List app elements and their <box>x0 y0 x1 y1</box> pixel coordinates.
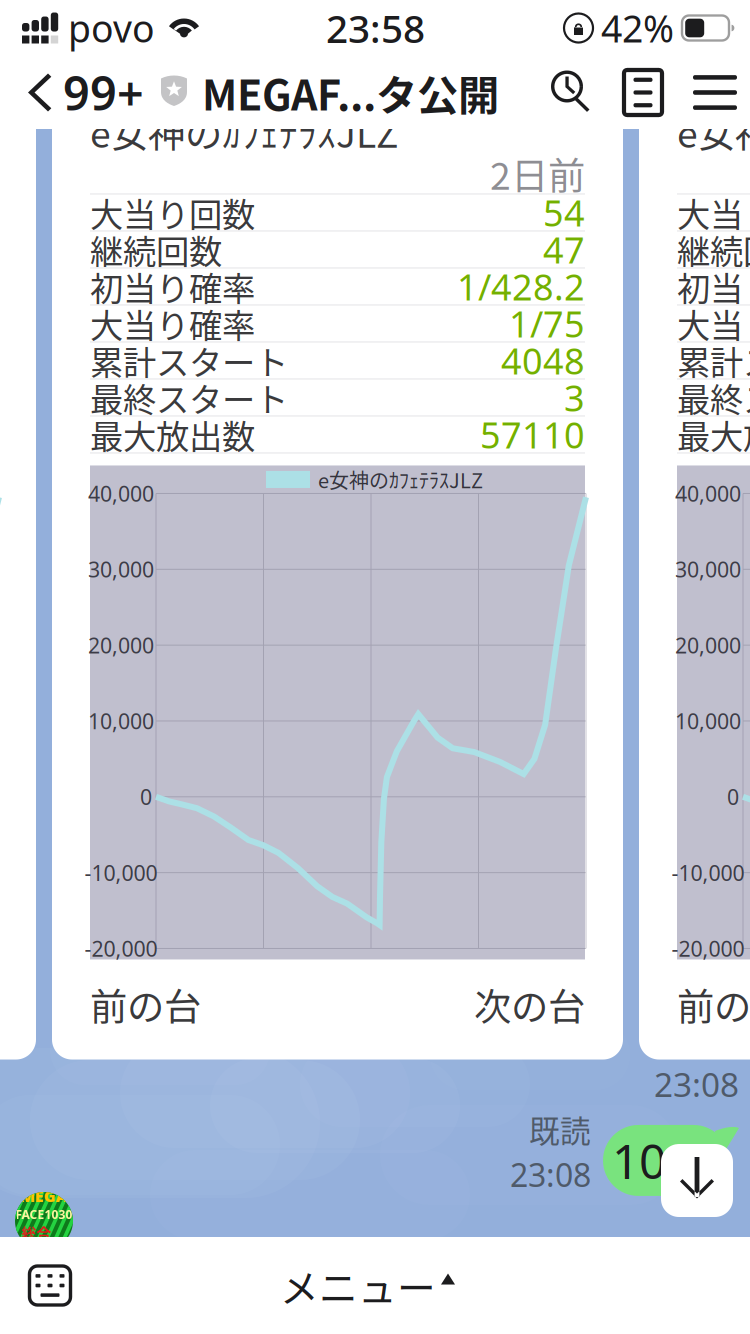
staticText: 1000 <box>612 1129 720 1192</box>
staticText: e女神のｶﾌｪﾃﾗｽJLZ <box>318 465 483 494</box>
staticText: 次の台 <box>474 977 585 1032</box>
staticText: 57110 <box>480 411 585 458</box>
button[interactable]: 次の台 <box>468 959 603 1050</box>
staticText: -10,000 <box>84 858 157 887</box>
staticText: 最大放出数 <box>90 410 255 459</box>
staticText: 23:08 <box>510 1153 591 1196</box>
staticText: 累計スタート <box>677 336 750 385</box>
staticText: 40,000 <box>675 479 741 508</box>
staticText: 継続回数 <box>90 225 222 274</box>
staticText: メニュー <box>280 1257 436 1313</box>
staticText: 20,000 <box>675 631 741 659</box>
staticText: 総合データ <box>21 1222 66 1265</box>
staticText: 47 <box>543 226 585 273</box>
button[interactable]: Search history <box>536 56 606 129</box>
staticText: MEGA <box>20 1185 68 1206</box>
button[interactable]: MEGAF...タ公開 <box>150 56 499 129</box>
staticText: 既読 <box>529 1107 591 1151</box>
staticText: 最終スタート <box>677 373 750 422</box>
staticText: 初当り確率 <box>677 262 750 311</box>
staticText: 大当り確率 <box>90 299 255 348</box>
button[interactable]: Menu <box>680 56 750 129</box>
staticText: 99+ <box>63 61 144 123</box>
staticText: povo <box>68 3 155 53</box>
button[interactable]: Notes <box>606 56 680 129</box>
staticText: 0 <box>140 783 152 811</box>
staticText: 23:58 <box>326 2 425 54</box>
staticText: 前の台 <box>677 977 750 1032</box>
staticText: FACE1030 <box>15 1206 72 1222</box>
button[interactable]: Scroll to bottom <box>661 1144 733 1217</box>
staticText: MEGAF...タ公開 <box>202 63 499 122</box>
staticText: 30,000 <box>88 555 154 583</box>
staticText: 継続回数 <box>677 225 750 274</box>
staticText: 最大放出数 <box>677 410 750 459</box>
staticText: 23:08 <box>654 1062 739 1106</box>
staticText: 40,000 <box>88 479 154 508</box>
staticText: 大当り回数 <box>90 188 255 237</box>
button[interactable]: 前の台 <box>72 959 207 1050</box>
button[interactable]: Keyboard <box>0 1237 86 1334</box>
staticText: -20,000 <box>671 934 744 963</box>
staticText: 4048 <box>501 337 585 384</box>
staticText: 54 <box>543 189 585 236</box>
staticText: 10,000 <box>88 707 154 735</box>
staticText: 42% <box>601 3 674 53</box>
button[interactable]: メニュー <box>280 1237 456 1334</box>
staticText: -10,000 <box>671 858 744 887</box>
staticText: 累計スタート <box>90 336 288 385</box>
staticText: 2日前 <box>490 146 585 200</box>
staticText: 前の台 <box>90 977 201 1032</box>
staticText: e女神のｶﾌｪﾃﾗｽJLZ <box>90 104 399 158</box>
staticText: e女神のｶﾌｪﾃﾗｽJLZ <box>677 104 750 158</box>
button[interactable]: 99+ <box>0 56 150 129</box>
staticText: 0 <box>727 783 739 811</box>
staticText: 30,000 <box>675 555 741 583</box>
staticText: 大当り回数 <box>677 188 750 237</box>
staticText: 初当り確率 <box>90 262 255 311</box>
staticText: 1/428.2 <box>457 263 585 310</box>
staticText: -20,000 <box>84 934 157 963</box>
staticText: 10,000 <box>675 707 741 735</box>
staticText: 1/75 <box>509 300 585 347</box>
staticText: 大当り確率 <box>677 299 750 348</box>
staticText: 最終スタート <box>90 373 288 422</box>
button[interactable]: 前の台 <box>659 959 750 1050</box>
staticText: 20,000 <box>88 631 154 659</box>
staticText: 3 <box>564 374 585 421</box>
